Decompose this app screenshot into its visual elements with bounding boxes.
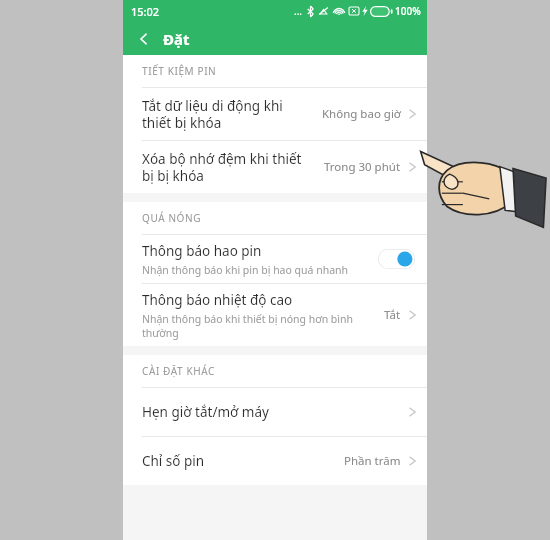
staticText: QUÁ NÓNG: [142, 211, 202, 225]
staticText: Nhận thông báo khi thiết bị nóng hơn bìn…: [142, 312, 354, 340]
button[interactable]: Xóa bộ nhớ đệm khi thiết bị bị khóa: [123, 141, 427, 193]
staticText: Thông báo nhiệt độ cao: [142, 291, 293, 309]
button[interactable]: Chỉ số pin: [123, 437, 427, 485]
staticText: CÀI ĐẶT KHÁC: [142, 364, 215, 378]
staticText: TIẾT KIỆM PIN: [142, 64, 217, 78]
staticText: Hẹn giờ tắt/mở máy: [142, 403, 408, 421]
staticText: Chỉ số pin: [142, 452, 344, 470]
button[interactable]: Thông báo nhiệt độ cao: [123, 284, 427, 346]
staticText: Tắt: [384, 307, 401, 323]
staticText: Trong 30 phút: [324, 159, 401, 175]
button[interactable]: Battery drain notification toggle: [378, 249, 415, 269]
button[interactable]: Hẹn giờ tắt/mở máy: [123, 388, 427, 436]
staticText: Nhận thông báo khi pin bị hao quá nhanh: [142, 263, 349, 277]
staticText: Tắt dữ liệu di động khi thiết bị khóa: [142, 97, 322, 132]
staticText: Không bao giờ: [322, 106, 401, 122]
staticText: Thông báo hao pin: [142, 242, 262, 260]
staticText: 15:02: [131, 4, 160, 19]
button[interactable]: Thông báo hao pin: [123, 235, 427, 283]
staticText: Đặt: [163, 29, 190, 49]
button[interactable]: Back: [129, 24, 159, 54]
staticText: Xóa bộ nhớ đệm khi thiết bị bị khóa: [142, 150, 324, 185]
staticText: Phần trăm: [344, 453, 401, 469]
button[interactable]: Tắt dữ liệu di động khi thiết bị khóa: [123, 88, 427, 140]
staticText: 100%: [395, 4, 421, 18]
staticText: ...: [294, 4, 303, 18]
